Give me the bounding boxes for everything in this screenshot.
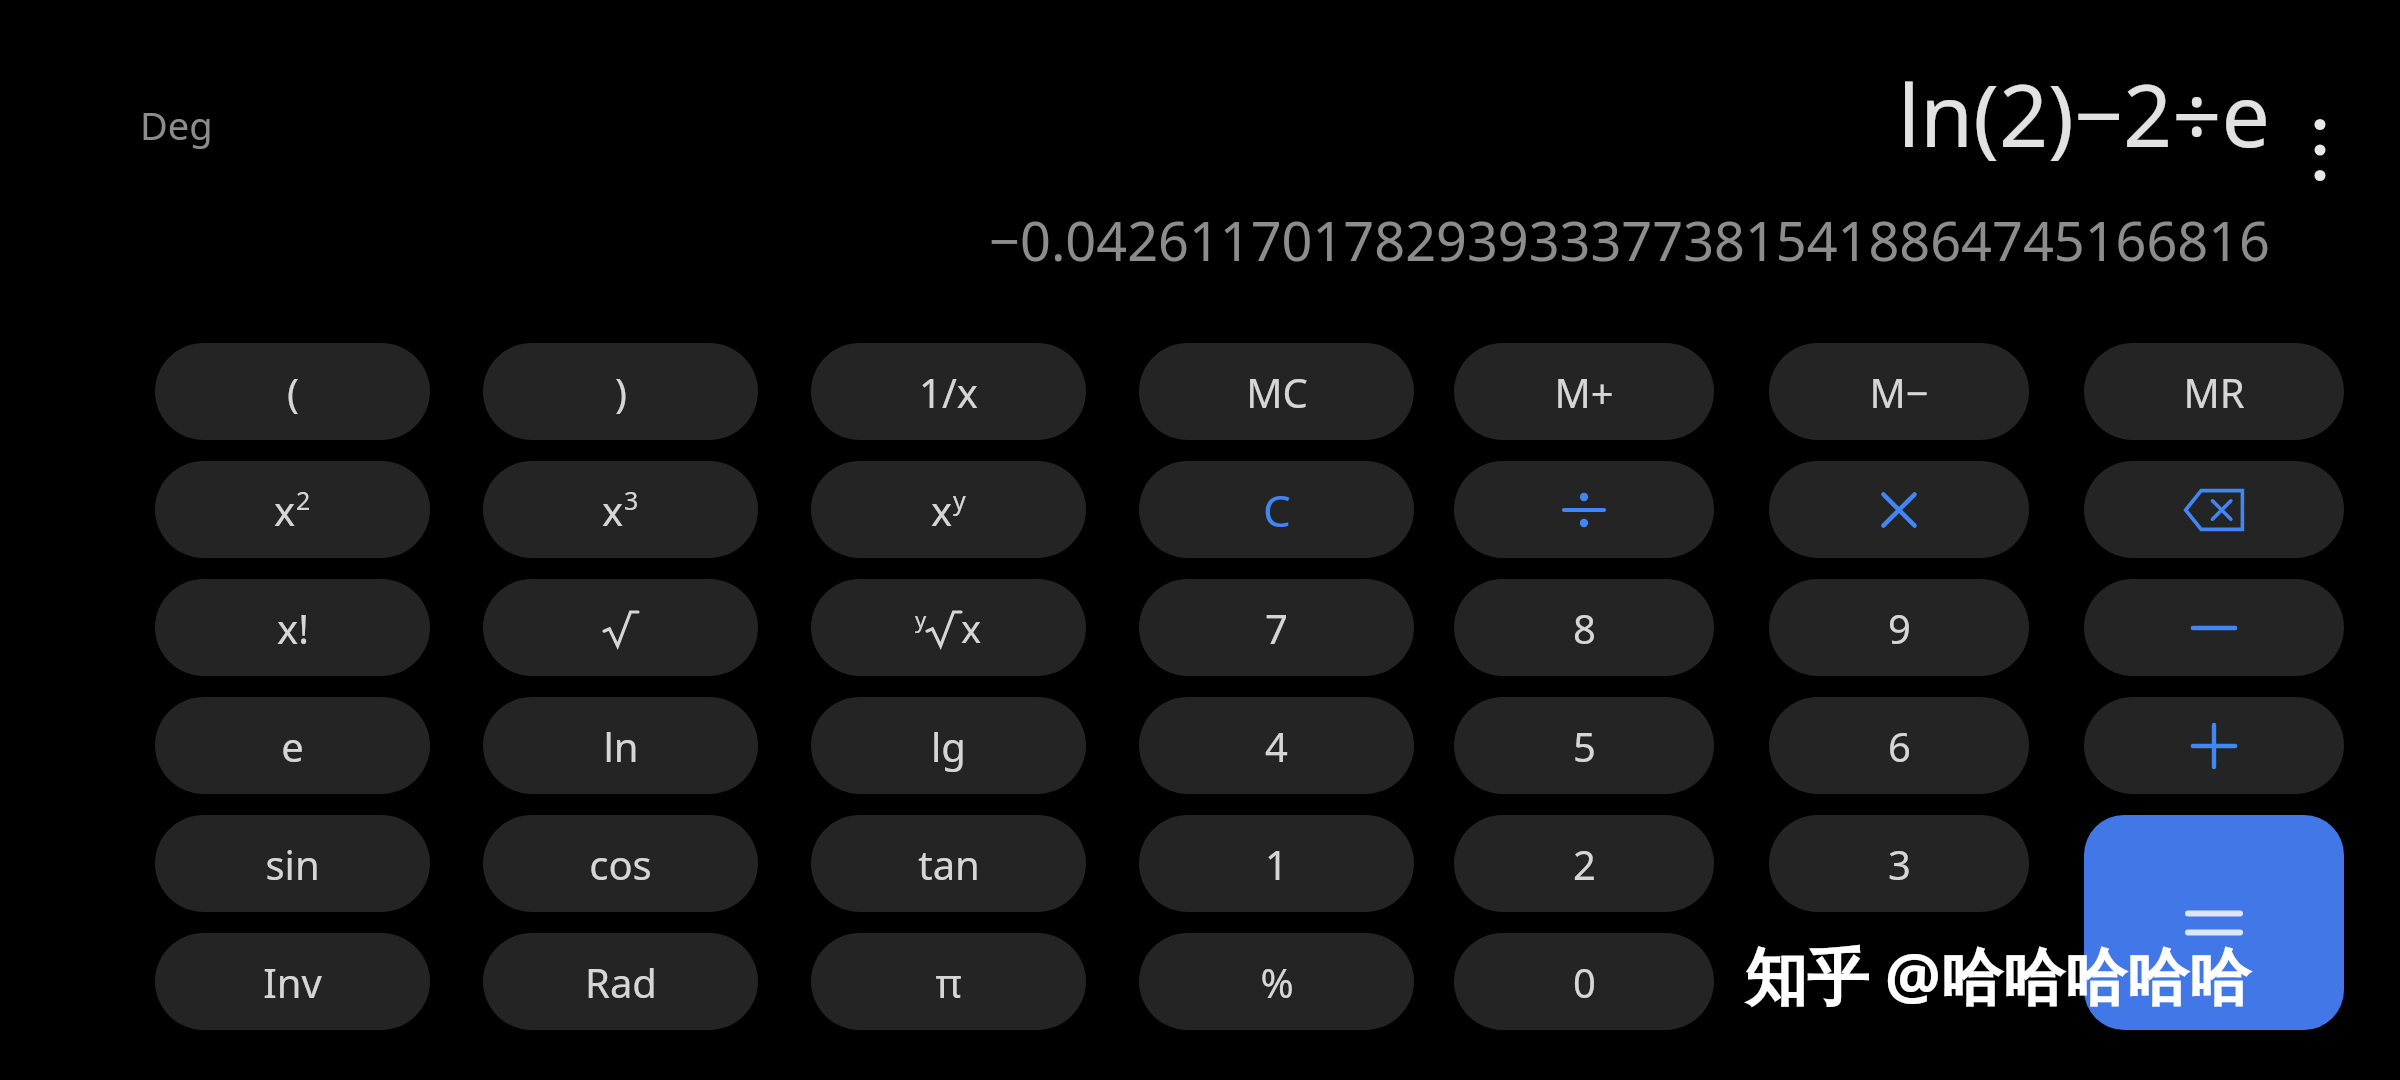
button[interactable]: Plus: [2084, 697, 2344, 794]
staticText: 知乎 @哈哈哈哈哈: [1745, 933, 2251, 1018]
button[interactable]: 0: [1454, 933, 1714, 1030]
button[interactable]: Multiply: [1769, 461, 2029, 558]
staticText: %: [1260, 955, 1294, 1009]
staticText: y: [915, 604, 927, 634]
button[interactable]: M+: [1454, 343, 1714, 440]
button[interactable]: ): [483, 343, 758, 440]
button[interactable]: Backspace: [2084, 461, 2344, 558]
button[interactable]: lg: [811, 697, 1086, 794]
button[interactable]: tan: [811, 815, 1086, 912]
button[interactable]: M−: [1769, 343, 2029, 440]
button[interactable]: More options: [2265, 95, 2375, 205]
button[interactable]: x: [155, 461, 430, 558]
staticText: 2: [296, 483, 311, 517]
staticText: 3: [1888, 837, 1911, 891]
button[interactable]: C: [1139, 461, 1414, 558]
button[interactable]: Inv: [155, 933, 430, 1030]
staticText: 2: [1573, 837, 1596, 891]
button[interactable]: 1/x: [811, 343, 1086, 440]
button[interactable]: sin: [155, 815, 430, 912]
staticText: 3: [624, 483, 639, 517]
button[interactable]: π: [811, 933, 1086, 1030]
button[interactable]: Minus: [2084, 579, 2344, 676]
staticText: MR: [2183, 365, 2245, 419]
button[interactable]: Deg: [140, 90, 290, 160]
button[interactable]: 8: [1454, 579, 1714, 676]
staticText: Deg: [140, 99, 213, 151]
button[interactable]: Rad: [483, 933, 758, 1030]
staticText: 7: [1265, 601, 1288, 655]
button[interactable]: MC: [1139, 343, 1414, 440]
button[interactable]: Equals: [2084, 815, 2344, 1030]
staticText: x: [961, 602, 982, 654]
staticText: −0.0426117017829393337738154188647451668…: [989, 203, 2270, 277]
staticText: Inv: [263, 955, 322, 1009]
staticText: Rad: [585, 955, 657, 1009]
button[interactable]: ln: [483, 697, 758, 794]
staticText: cos: [589, 837, 652, 891]
staticText: x: [931, 483, 953, 537]
staticText: x: [274, 483, 296, 537]
staticText: sin: [265, 837, 320, 891]
button[interactable]: 3: [1769, 815, 2029, 912]
button[interactable]: x!: [155, 579, 430, 676]
staticText: M−: [1869, 365, 1929, 419]
button[interactable]: %: [1139, 933, 1414, 1030]
button[interactable]: Nth root: [811, 579, 1086, 676]
staticText: 8: [1573, 601, 1596, 655]
button[interactable]: cos: [483, 815, 758, 912]
staticText: tan: [918, 837, 980, 891]
staticText: C: [1263, 480, 1291, 540]
staticText: 9: [1888, 601, 1911, 655]
staticText: lg: [931, 719, 966, 773]
staticText: x: [602, 483, 624, 537]
button[interactable]: 5: [1454, 697, 1714, 794]
staticText: 4: [1265, 719, 1288, 773]
button[interactable]: 2: [1454, 815, 1714, 912]
staticText: π: [935, 955, 962, 1009]
button[interactable]: x: [483, 461, 758, 558]
button[interactable]: Divide: [1454, 461, 1714, 558]
staticText: e: [281, 719, 304, 773]
staticText: 0: [1573, 955, 1596, 1009]
button[interactable]: 7: [1139, 579, 1414, 676]
staticText: MC: [1246, 365, 1308, 419]
button[interactable]: Square root: [483, 579, 758, 676]
button[interactable]: MR: [2084, 343, 2344, 440]
button[interactable]: (: [155, 343, 430, 440]
staticText: y: [953, 483, 966, 517]
staticText: ln: [603, 719, 639, 773]
staticText: (: [287, 365, 299, 419]
button[interactable]: 6: [1769, 697, 2029, 794]
button[interactable]: 9: [1769, 579, 2029, 676]
button[interactable]: 1: [1139, 815, 1414, 912]
staticText: 5: [1573, 719, 1596, 773]
button[interactable]: x: [811, 461, 1086, 558]
staticText: 6: [1888, 719, 1911, 773]
staticText: M+: [1554, 365, 1614, 419]
staticText: 1/x: [919, 365, 978, 419]
button[interactable]: e: [155, 697, 430, 794]
staticText: 1: [1265, 837, 1288, 891]
button[interactable]: 4: [1139, 697, 1414, 794]
staticText: x!: [277, 601, 309, 655]
staticText: ): [615, 365, 627, 419]
staticText: ln(2)−2÷e: [1897, 55, 2270, 165]
